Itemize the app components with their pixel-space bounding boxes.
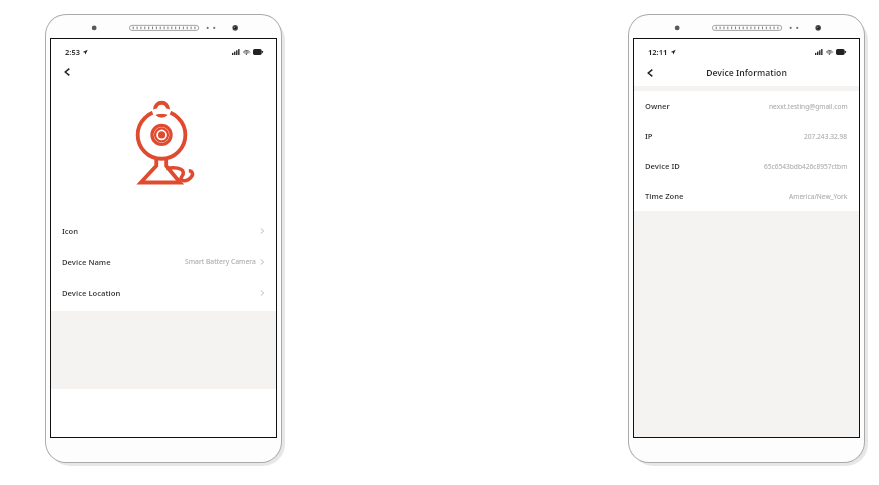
- button[interactable]: Back: [59, 64, 75, 80]
- staticText: 207.243.32.98: [804, 132, 848, 141]
- staticText: Time Zone: [645, 191, 684, 201]
- button[interactable]: Owner: [634, 91, 859, 121]
- button[interactable]: Device ID: [634, 151, 859, 181]
- staticText: nexxt.testing@gmail.com: [769, 102, 848, 111]
- button[interactable]: Device Location: [51, 277, 276, 308]
- button[interactable]: Device Name: [51, 246, 276, 277]
- staticText: America/New_York: [789, 192, 848, 201]
- staticText: IP: [645, 131, 653, 141]
- staticText: Device Location: [62, 288, 121, 298]
- button[interactable]: Time Zone: [634, 181, 859, 211]
- staticText: Smart Battery Camera: [185, 257, 256, 266]
- staticText: Icon: [62, 226, 79, 236]
- staticText: Device ID: [645, 161, 680, 171]
- staticText: Owner: [645, 101, 670, 111]
- button[interactable]: Back: [642, 65, 658, 81]
- staticText: 12:11: [648, 47, 668, 57]
- staticText: Device Name: [62, 257, 111, 267]
- staticText: 65c6543bdb426c8957ctbm: [764, 162, 848, 171]
- staticText: Device Information: [706, 67, 787, 79]
- button[interactable]: IP: [634, 121, 859, 151]
- staticText: 2:53: [65, 47, 80, 57]
- button[interactable]: Icon: [51, 215, 276, 246]
